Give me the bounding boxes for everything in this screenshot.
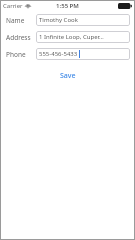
- staticText: 1:55 PM: [56, 2, 79, 10]
- staticText: Timothy Cook: [39, 16, 78, 24]
- button[interactable]: Save: [54, 69, 82, 83]
- staticText: Phone: [6, 50, 34, 59]
- button[interactable]: Timothy Cook: [36, 14, 130, 26]
- staticText: 555-456-5433: [39, 50, 78, 58]
- staticText: Name: [6, 16, 34, 25]
- staticText: Address: [6, 33, 34, 42]
- staticText: Carrier: [3, 2, 23, 10]
- staticText: Save: [60, 71, 76, 81]
- button[interactable]: 1 Infinite Loop, Cuper…: [36, 31, 130, 43]
- button[interactable]: 555-456-5433: [36, 48, 130, 60]
- staticText: 1 Infinite Loop, Cuper…: [39, 33, 104, 41]
